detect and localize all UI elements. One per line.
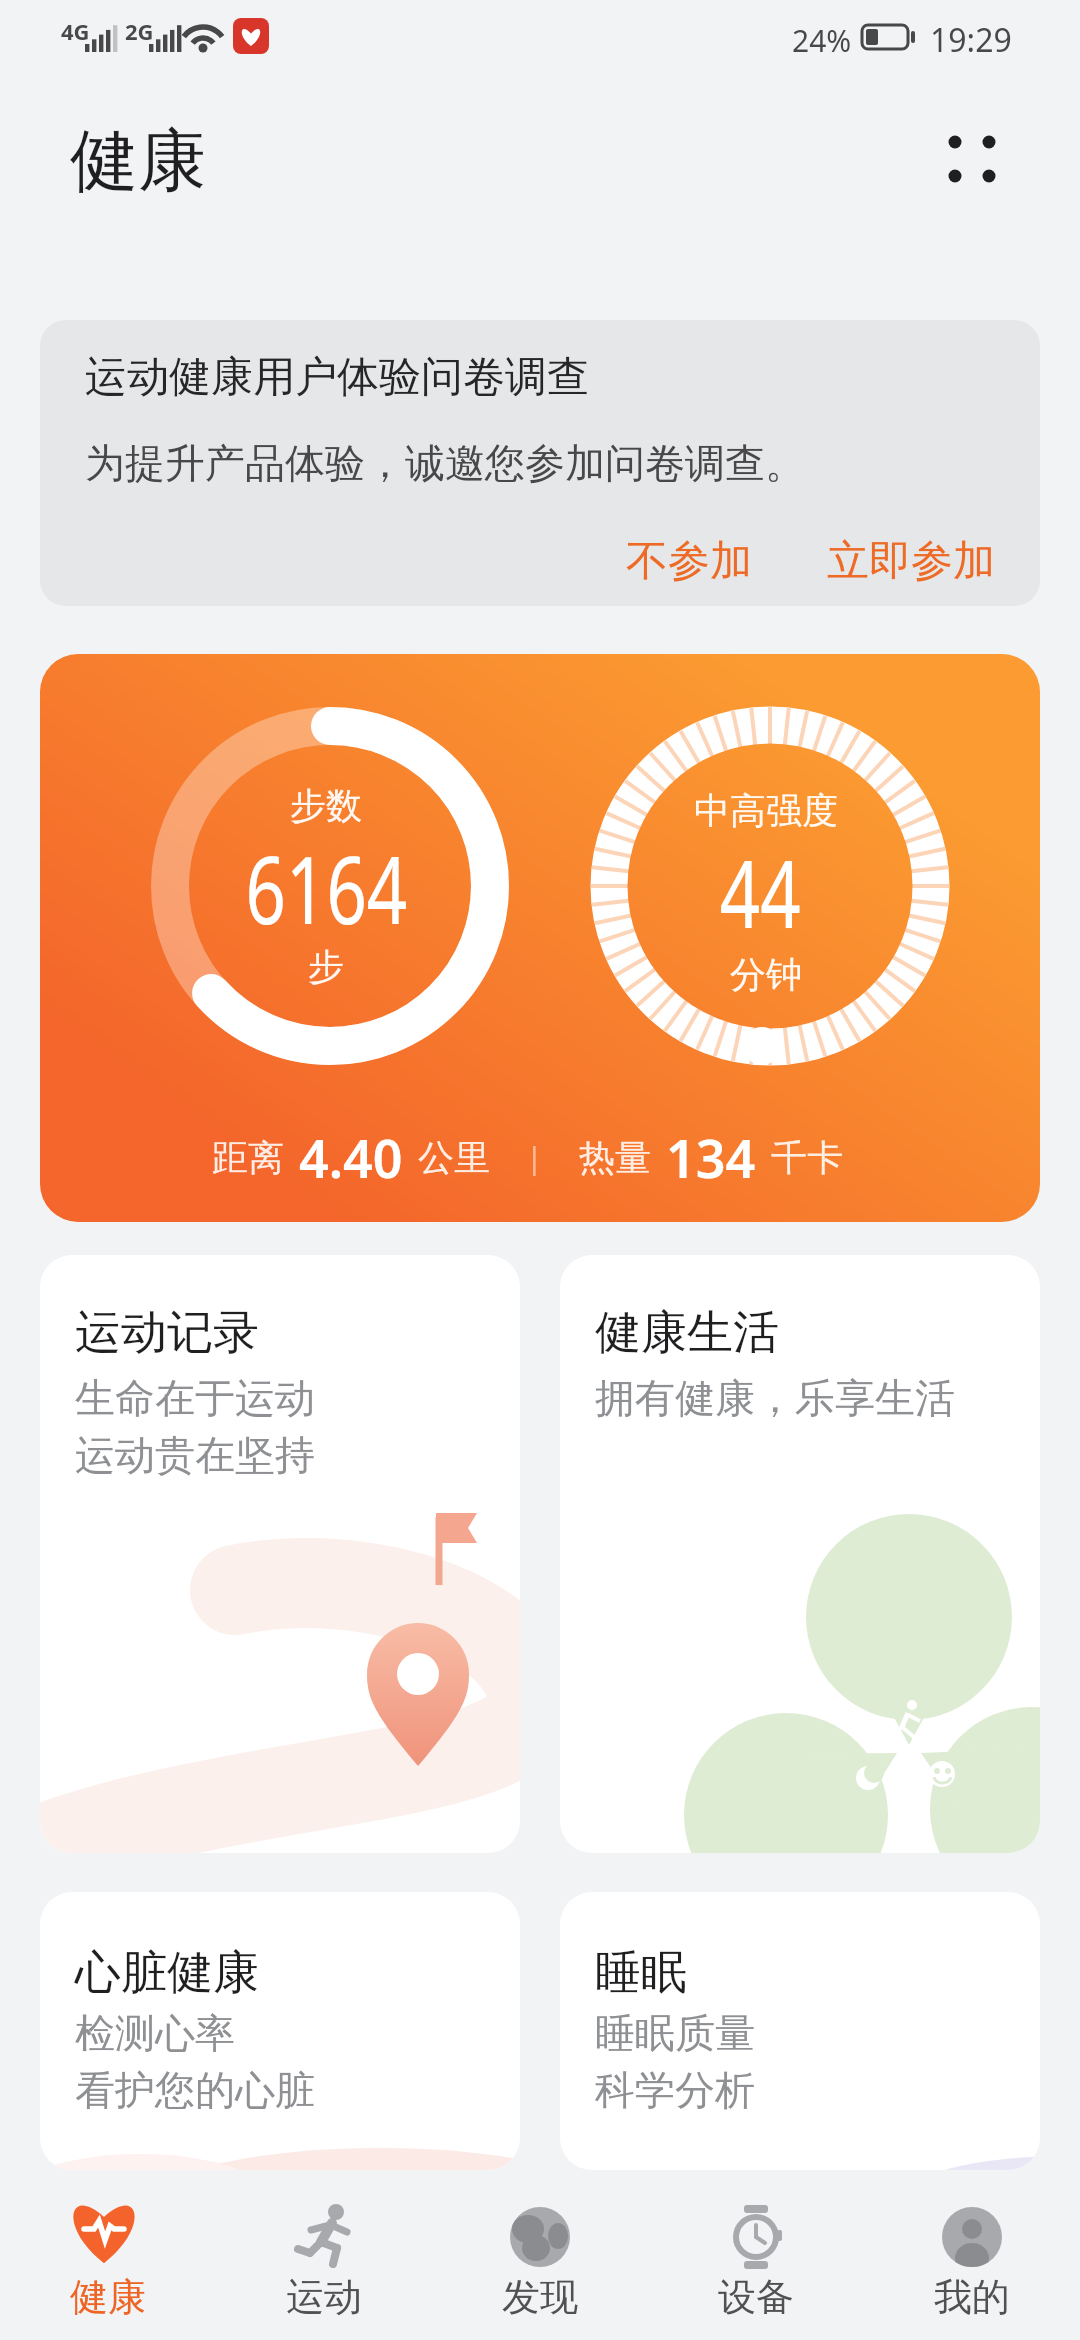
button[interactable]: 立即参加 xyxy=(827,535,995,588)
button[interactable]: 健康 xyxy=(18,2185,198,2335)
staticText: 4G xyxy=(61,16,90,46)
staticText: 立即参加 xyxy=(827,535,995,588)
staticText: 我的 xyxy=(934,2273,1010,2321)
staticText: 2G xyxy=(125,16,154,46)
staticText: 步 xyxy=(308,944,344,989)
staticText: 健康 xyxy=(70,119,206,205)
staticText: | xyxy=(526,1137,543,1178)
button[interactable]: 健康生活 xyxy=(560,1255,1040,1853)
staticText: 睡眠质量 科学分析 xyxy=(595,2008,755,2116)
button[interactable]: 步数 xyxy=(40,654,1040,1222)
staticText: 睡眠 xyxy=(595,1944,687,2002)
staticText: 心脏健康 xyxy=(75,1944,259,2002)
staticText: 运动记录 xyxy=(75,1304,259,1362)
staticText: 设备 xyxy=(718,2273,794,2321)
staticText: 24% xyxy=(792,20,852,61)
staticText: 运动健康用户体验问卷调查 xyxy=(85,351,589,404)
staticText: 距离 xyxy=(212,1135,284,1180)
button[interactable]: 发现 xyxy=(450,2185,630,2335)
staticText: 运动 xyxy=(286,2273,362,2321)
staticText: 4.40 xyxy=(299,1122,403,1193)
staticText: 健康生活 xyxy=(595,1304,779,1362)
staticText: 134 xyxy=(666,1122,756,1193)
button[interactable]: 我的 xyxy=(882,2185,1062,2335)
staticText: 千卡 xyxy=(771,1135,843,1180)
button[interactable]: 设备 xyxy=(666,2185,846,2335)
staticText: 19:29 xyxy=(930,18,1012,62)
staticText: 公里 xyxy=(418,1135,490,1180)
staticText: 中高强度 xyxy=(694,788,838,833)
staticText: 检测心率 看护您的心脏 xyxy=(75,2008,315,2116)
button[interactable]: 不参加 xyxy=(626,535,752,588)
staticText: 热量 xyxy=(579,1135,651,1180)
staticText: 分钟 xyxy=(730,952,802,997)
staticText: 6164 xyxy=(246,825,407,935)
staticText: 为提升产品体验，诚邀您参加问卷调查。 xyxy=(85,438,805,488)
button[interactable]: 睡眠 xyxy=(560,1892,1040,2170)
staticText: 发现 xyxy=(502,2273,578,2321)
button[interactable] xyxy=(930,115,1020,205)
staticText: 不参加 xyxy=(626,535,752,588)
staticText: 生命在于运动 运动贵在坚持 xyxy=(75,1373,316,1481)
staticText: 44 xyxy=(720,829,801,939)
staticText: 步数 xyxy=(290,783,362,828)
button[interactable]: 运动记录 xyxy=(40,1255,520,1853)
staticText: 健康 xyxy=(70,2273,146,2321)
staticText: 拥有健康，乐享生活 xyxy=(595,1373,955,1423)
button[interactable]: 心脏健康 xyxy=(40,1892,520,2170)
button[interactable]: 运动 xyxy=(234,2185,414,2335)
